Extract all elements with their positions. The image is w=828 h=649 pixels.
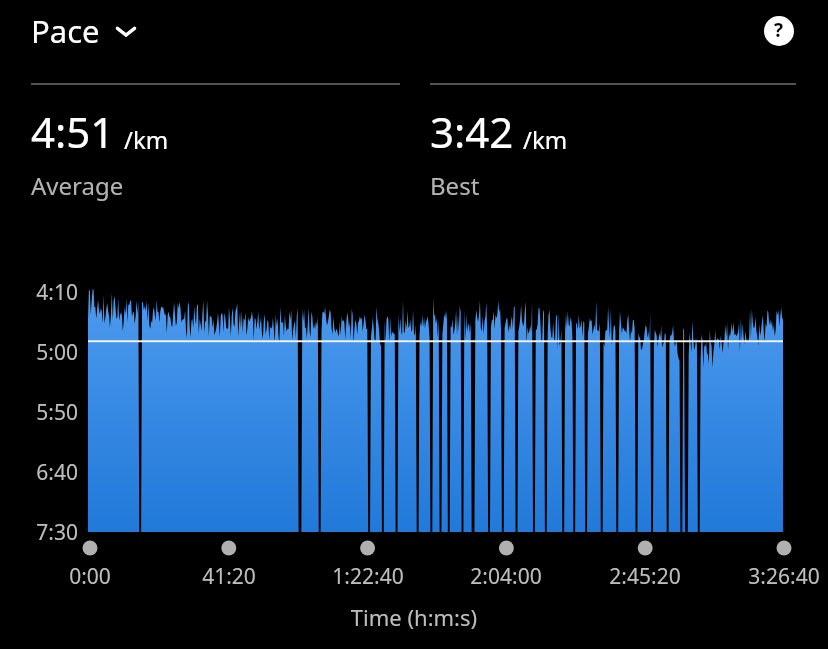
staticText: 3:26:40: [704, 562, 828, 591]
staticText: 4:51: [31, 103, 115, 160]
staticText: 2:04:00: [426, 562, 586, 591]
staticText: 0:00: [10, 562, 170, 591]
staticText: Best: [430, 169, 480, 202]
staticText: /km: [523, 123, 568, 156]
staticText: 7:30: [28, 518, 78, 547]
button[interactable]: Pace: [31, 10, 139, 52]
staticText: 41:20: [149, 562, 309, 591]
staticText: 3:42: [430, 103, 514, 160]
staticText: 5:50: [28, 398, 78, 427]
staticText: 5:00: [28, 338, 78, 367]
button[interactable]: Help: [764, 16, 794, 46]
staticText: 4:10: [28, 278, 78, 307]
staticText: Average: [31, 169, 124, 202]
staticText: 2:45:20: [565, 562, 725, 591]
staticText: /km: [124, 123, 169, 156]
staticText: 6:40: [28, 458, 78, 487]
staticText: 1:22:40: [288, 562, 448, 591]
staticText: Pace: [31, 10, 100, 52]
staticText: ?: [774, 17, 784, 43]
staticText: Time (h:m:s): [0, 602, 828, 632]
